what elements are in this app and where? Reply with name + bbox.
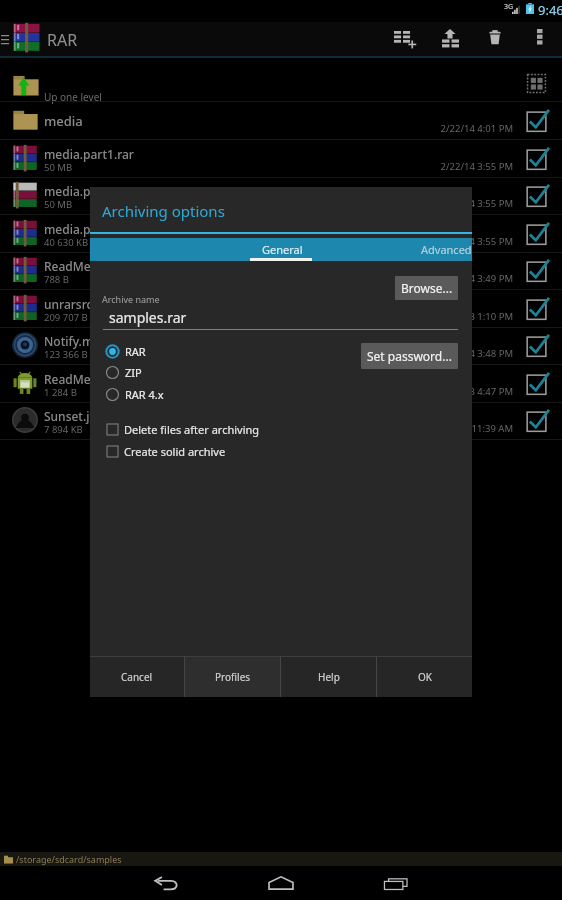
button[interactable]: ReadMe.txt: [0, 365, 562, 403]
staticText: RAR: [125, 344, 146, 359]
staticText: samples.rar: [109, 308, 187, 327]
staticText: /storage/sdcard/samples: [16, 853, 122, 865]
staticText: 2/22/14 4:01 PM: [330, 122, 513, 135]
staticText: 7 894 KB: [44, 423, 83, 436]
staticText: Set password...: [367, 348, 452, 364]
staticText: media.part3.rar: [44, 221, 344, 237]
button[interactable]: RAR 4.x: [90, 383, 472, 405]
staticText: 209 707 B: [44, 311, 88, 324]
staticText: ZIP: [125, 365, 142, 380]
button[interactable]: ReadMe.zip: [0, 252, 562, 290]
button[interactable]: media.part2.rar: [0, 177, 562, 215]
staticText: 9:46: [538, 1, 562, 19]
button[interactable]: Add to archive: [383, 22, 427, 58]
staticText: 2/7/13 1:10 PM: [330, 310, 513, 323]
button[interactable]: Up one level: [0, 58, 562, 102]
button[interactable]: Browse...: [395, 276, 458, 300]
button[interactable]: Cancel: [90, 657, 184, 697]
staticText: RAR: [47, 29, 78, 51]
staticText: media: [44, 112, 344, 130]
staticText: media.part2.rar: [44, 183, 344, 199]
staticText: 2/22/14 3:48 PM: [330, 347, 513, 360]
button[interactable]: Set password...: [361, 343, 458, 369]
staticText: Create solid archive: [124, 444, 226, 459]
button[interactable]: media.part1.rar: [0, 140, 562, 178]
button[interactable]: More options: [518, 22, 562, 58]
button[interactable]: Advanced: [406, 238, 486, 261]
button[interactable]: RAR: [90, 340, 472, 362]
staticText: Cancel: [121, 670, 153, 684]
button[interactable]: media: [0, 102, 562, 140]
button[interactable]: Delete files after archiving: [90, 418, 472, 440]
staticText: 2/22/14 3:55 PM: [330, 197, 513, 210]
staticText: Up one level: [44, 90, 102, 104]
staticText: Delete files after archiving: [124, 422, 260, 437]
button[interactable]: Delete: [473, 22, 517, 58]
staticText: 1 284 B: [44, 386, 77, 399]
button[interactable]: unrarsrc-5.0.14.tar.gz: [0, 290, 562, 328]
staticText: unrarsrc-5.0.14.tar.gz: [44, 296, 344, 312]
button[interactable]: Home: [236, 866, 326, 900]
staticText: Browse...: [401, 280, 453, 296]
staticText: Archive name: [102, 293, 160, 305]
staticText: Profiles: [215, 670, 251, 684]
staticText: ReadMe.txt: [44, 371, 344, 387]
button[interactable]: /storage/sdcard/samples: [0, 852, 562, 866]
staticText: 2/22/14 3:49 PM: [330, 272, 513, 285]
staticText: Advanced: [421, 242, 472, 257]
button[interactable]: media.part3.rar: [0, 215, 562, 253]
button[interactable]: Sunset.jpg: [0, 402, 562, 440]
staticText: 50 MB: [44, 161, 73, 174]
button[interactable]: Extract: [428, 22, 472, 58]
staticText: Archiving options: [102, 201, 225, 221]
staticText: 40 630 KB: [44, 236, 89, 249]
button[interactable]: Recent apps: [350, 866, 440, 900]
staticText: OK: [418, 670, 432, 684]
staticText: media.part1.rar: [44, 146, 344, 162]
staticText: Sunset.jpg: [44, 408, 344, 424]
button[interactable]: General: [242, 238, 322, 261]
staticText: 2/22/14 3:55 PM: [330, 160, 513, 173]
staticText: 3G: [504, 2, 514, 12]
staticText: Notify.mp3: [44, 333, 344, 349]
button[interactable]: Help: [281, 657, 376, 697]
button[interactable]: Create solid archive: [90, 440, 472, 462]
staticText: 50 MB: [44, 198, 73, 211]
staticText: 2/7/13 4:47 PM: [330, 385, 513, 398]
staticText: 2/22/14 3:55 PM: [330, 235, 513, 248]
button[interactable]: Navigation drawer: [0, 22, 10, 58]
staticText: 123 366 B: [44, 348, 88, 361]
button[interactable]: Select all: [520, 67, 552, 99]
button[interactable]: Back: [121, 866, 211, 900]
staticText: Help: [318, 670, 340, 684]
staticText: 3/3/14 11:39 AM: [330, 422, 513, 435]
button[interactable]: Notify.mp3: [0, 327, 562, 365]
staticText: ReadMe.zip: [44, 258, 344, 274]
button[interactable]: OK: [377, 657, 472, 697]
staticText: RAR 4.x: [125, 387, 164, 402]
staticText: General: [262, 242, 303, 257]
button[interactable]: ZIP: [90, 361, 472, 383]
staticText: 788 B: [44, 273, 69, 286]
button[interactable]: Profiles: [185, 657, 280, 697]
